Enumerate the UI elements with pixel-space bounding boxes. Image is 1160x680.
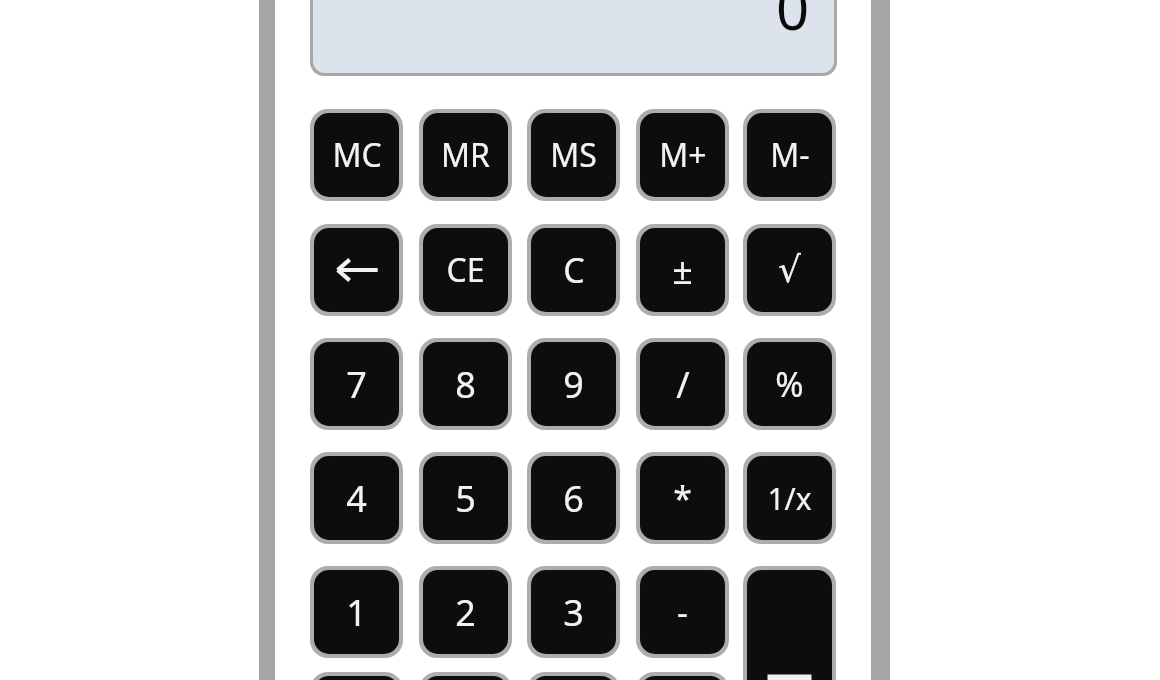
- staticText: -: [677, 589, 688, 635]
- button[interactable]: 5: [423, 456, 508, 540]
- button[interactable]: C: [531, 228, 616, 312]
- staticText: 1: [346, 588, 367, 637]
- button[interactable]: *: [640, 456, 725, 540]
- button[interactable]: .: [423, 676, 508, 680]
- button[interactable]: 7: [314, 342, 399, 426]
- staticText: MS: [550, 133, 597, 177]
- staticText: 6: [563, 474, 584, 523]
- staticText: ±: [672, 246, 693, 295]
- button[interactable]: MS: [531, 113, 616, 197]
- button[interactable]: 2: [423, 570, 508, 654]
- staticText: 8: [455, 360, 476, 409]
- button[interactable]: MC: [314, 113, 399, 197]
- staticText: 1/x: [767, 478, 812, 519]
- button[interactable]: 4: [314, 456, 399, 540]
- staticText: %: [775, 361, 804, 407]
- button[interactable]: 8: [423, 342, 508, 426]
- button[interactable]: Backspace: [314, 228, 399, 312]
- button[interactable]: MR: [423, 113, 508, 197]
- button[interactable]: 3: [531, 570, 616, 654]
- staticText: MC: [332, 133, 382, 177]
- button[interactable]: 1/x: [747, 456, 832, 540]
- staticText: MR: [441, 133, 490, 177]
- button[interactable]: ±: [640, 228, 725, 312]
- button[interactable]: CE: [423, 228, 508, 312]
- button[interactable]: Equals: [747, 570, 832, 680]
- button[interactable]: ^: [640, 676, 725, 680]
- staticText: 5: [455, 474, 476, 523]
- staticText: √: [778, 249, 801, 291]
- staticText: 4: [346, 474, 367, 523]
- staticText: C: [563, 247, 585, 293]
- button[interactable]: 0: [313, 0, 834, 73]
- staticText: *: [673, 475, 692, 521]
- staticText: 2: [455, 588, 476, 637]
- staticText: M+: [659, 133, 707, 177]
- staticText: 0: [776, 0, 810, 47]
- staticText: M-: [770, 133, 810, 177]
- button[interactable]: 9: [531, 342, 616, 426]
- button[interactable]: M-: [747, 113, 832, 197]
- button[interactable]: -: [640, 570, 725, 654]
- staticText: CE: [446, 248, 485, 292]
- staticText: 9: [563, 360, 584, 409]
- button[interactable]: 0: [314, 676, 399, 680]
- staticText: 7: [346, 360, 367, 409]
- button[interactable]: +: [531, 676, 616, 680]
- button[interactable]: /: [640, 342, 725, 426]
- staticText: /: [676, 360, 690, 409]
- button[interactable]: 1: [314, 570, 399, 654]
- button[interactable]: 6: [531, 456, 616, 540]
- button[interactable]: %: [747, 342, 832, 426]
- button[interactable]: M+: [640, 113, 725, 197]
- button[interactable]: √: [747, 228, 832, 312]
- staticText: 3: [563, 588, 584, 637]
